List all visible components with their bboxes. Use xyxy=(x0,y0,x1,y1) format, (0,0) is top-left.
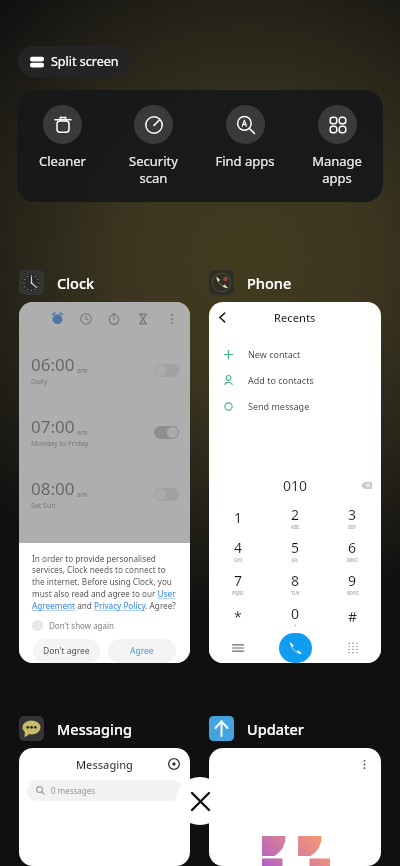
button[interactable]: 0 messages xyxy=(27,780,182,801)
button[interactable]: Menu xyxy=(209,633,267,663)
staticText: Add to contacts xyxy=(248,374,314,386)
button[interactable]: New contact xyxy=(209,341,381,367)
staticText: TUV xyxy=(291,590,300,596)
staticText: 0 messages xyxy=(51,785,96,796)
staticText: am xyxy=(77,428,88,438)
staticText: Daily xyxy=(31,377,48,387)
staticText: MNO xyxy=(347,557,359,563)
button[interactable]: More options xyxy=(209,748,381,866)
button[interactable]: Agree xyxy=(108,639,176,663)
staticText: + xyxy=(294,623,297,629)
staticText: Updater xyxy=(247,719,304,739)
button[interactable]: 0 xyxy=(267,600,324,633)
button[interactable]: Find apps xyxy=(199,105,291,170)
staticText: 0 xyxy=(291,604,300,623)
button[interactable]: Send message xyxy=(209,393,381,419)
staticText: Sat Sun xyxy=(31,501,56,511)
staticText: 06:00 xyxy=(31,353,75,376)
button[interactable]: Clear all xyxy=(176,777,224,825)
button[interactable]: 5 xyxy=(267,534,324,567)
staticText: Security scan xyxy=(129,152,178,187)
staticText: am xyxy=(77,490,88,500)
staticText: ABC xyxy=(291,524,300,530)
staticText: 07:00 xyxy=(31,415,75,438)
button[interactable]: 8 xyxy=(267,567,324,600)
other: Settings xyxy=(168,758,180,770)
button[interactable]: Phone xyxy=(209,270,292,295)
button[interactable]: Messaging xyxy=(19,748,190,866)
button[interactable]: Manage apps xyxy=(291,105,383,187)
staticText: 3 xyxy=(348,505,357,524)
button[interactable]: Don't agree xyxy=(33,639,100,663)
button[interactable]: Keypad xyxy=(324,633,381,663)
button[interactable]: 1 xyxy=(209,501,267,534)
staticText: 6 xyxy=(348,538,357,557)
button[interactable]: Split screen xyxy=(18,46,131,77)
button[interactable]: Cleaner xyxy=(17,105,108,170)
staticText: Split screen xyxy=(51,53,119,70)
button[interactable] xyxy=(154,488,179,501)
staticText: 1 xyxy=(234,508,243,527)
staticText: Agree xyxy=(130,645,154,657)
button[interactable]: 7 xyxy=(209,567,267,600)
staticText: JKL xyxy=(292,557,299,563)
staticText: WXYZ xyxy=(347,590,359,596)
staticText: GHI xyxy=(234,557,243,563)
staticText: Messaging xyxy=(76,757,133,772)
staticText: PQRS xyxy=(232,590,244,596)
staticText: Find apps xyxy=(215,152,275,170)
staticText: Don't show again xyxy=(49,620,115,631)
other: More options xyxy=(359,759,370,770)
staticText: Manage apps xyxy=(312,152,362,187)
button[interactable]: Don't show again xyxy=(32,620,115,631)
staticText: 8 xyxy=(291,571,300,590)
staticText: New contact xyxy=(248,348,301,360)
staticText: 7 xyxy=(234,571,243,590)
button[interactable]: 3 xyxy=(324,501,381,534)
staticText: Phone xyxy=(247,273,292,293)
staticText: 010 xyxy=(283,476,308,495)
button[interactable] xyxy=(154,426,179,439)
staticText: Send message xyxy=(248,400,310,412)
button[interactable]: Messaging xyxy=(19,716,133,741)
button[interactable]: Call xyxy=(267,633,324,663)
staticText: 4 xyxy=(234,538,243,557)
button[interactable]: Security scan xyxy=(108,105,199,187)
button[interactable]: 6 xyxy=(324,534,381,567)
staticText: 08:00 xyxy=(31,477,75,500)
button[interactable] xyxy=(154,364,179,377)
staticText: # xyxy=(348,607,358,626)
button[interactable]: 4 xyxy=(209,534,267,567)
button[interactable]: * xyxy=(209,600,267,633)
staticText: In order to provide personalised service… xyxy=(32,553,177,612)
staticText: Messaging xyxy=(57,719,133,739)
staticText: 9 xyxy=(348,571,357,590)
button[interactable]: Back xyxy=(209,302,381,663)
staticText: 5 xyxy=(291,538,300,557)
button[interactable]: Add to contacts xyxy=(209,367,381,393)
staticText: 2 xyxy=(291,505,300,524)
button[interactable]: 2 xyxy=(267,501,324,534)
staticText: Recents xyxy=(274,310,316,325)
staticText: DEF xyxy=(348,524,357,530)
button[interactable]: # xyxy=(324,600,381,633)
staticText: * xyxy=(234,607,242,626)
button[interactable]: 06:00 xyxy=(19,302,190,663)
staticText: Cleaner xyxy=(39,152,86,170)
button[interactable]: Updater xyxy=(209,716,304,741)
button[interactable]: Clock xyxy=(19,270,95,295)
staticText: Don't agree xyxy=(43,645,90,657)
staticText: Monday to Friday xyxy=(31,439,89,449)
other: Back xyxy=(217,312,228,323)
other: Backspace xyxy=(361,480,372,491)
button[interactable]: 9 xyxy=(324,567,381,600)
staticText: Clock xyxy=(57,273,95,293)
staticText: am xyxy=(77,366,88,376)
